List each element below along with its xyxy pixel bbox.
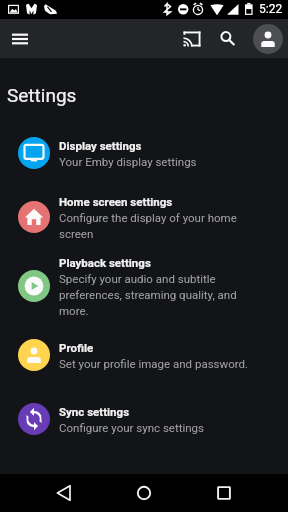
staticText: Settings bbox=[7, 84, 77, 106]
staticText: 5:22 bbox=[259, 2, 283, 16]
button[interactable]: User profile bbox=[253, 24, 283, 54]
button[interactable]: Search bbox=[214, 25, 242, 53]
staticText: Display settings bbox=[59, 137, 142, 153]
button[interactable]: Open navigation menu bbox=[4, 23, 36, 55]
button[interactable]: Playback settings bbox=[0, 249, 288, 323]
staticText: Playback settings bbox=[59, 254, 151, 270]
button[interactable]: Sync settings bbox=[0, 387, 288, 451]
staticText: Home screen settings bbox=[59, 193, 173, 209]
button[interactable]: Recent apps bbox=[206, 475, 242, 511]
button[interactable]: Profile bbox=[0, 323, 288, 387]
staticText: Set your profile image and password. bbox=[59, 355, 249, 371]
button[interactable]: Display settings bbox=[0, 121, 288, 185]
staticText: Specify your audio and subtitle preferen… bbox=[59, 270, 254, 318]
staticText: Configure the display of your home scree… bbox=[59, 209, 254, 241]
button[interactable]: Home screen settings bbox=[0, 185, 288, 249]
staticText: Profile bbox=[59, 339, 94, 355]
staticText: Your Emby display settings bbox=[59, 153, 197, 169]
staticText: Configure your sync settings bbox=[59, 419, 205, 435]
staticText: Sync settings bbox=[59, 403, 130, 419]
button[interactable]: Cast bbox=[178, 25, 206, 53]
button[interactable]: Back bbox=[46, 475, 82, 511]
button[interactable]: Home bbox=[126, 475, 162, 511]
